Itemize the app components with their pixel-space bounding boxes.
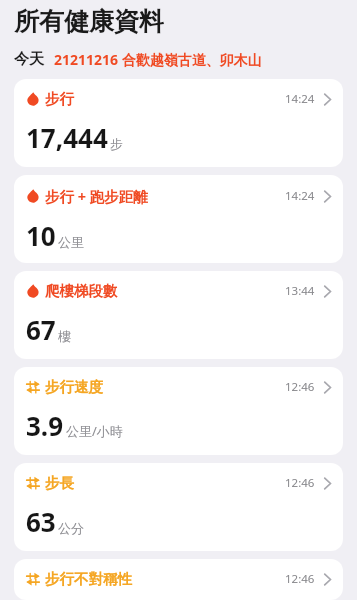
staticText: 步行速度 bbox=[45, 378, 103, 396]
staticText: 67 bbox=[26, 312, 56, 347]
staticText: 13:44 bbox=[285, 283, 315, 299]
staticText: 12:46 bbox=[285, 571, 315, 587]
other: Open details bbox=[324, 573, 331, 586]
staticText: 63 bbox=[26, 504, 56, 539]
staticText: 公里 bbox=[58, 234, 84, 250]
button[interactable]: 步行 + 跑步距離 bbox=[14, 175, 343, 263]
staticText: 步行 bbox=[45, 90, 74, 108]
button[interactable]: 步行不對稱性 bbox=[14, 559, 343, 600]
staticText: 今天 bbox=[14, 50, 44, 69]
staticText: 步長 bbox=[45, 474, 74, 492]
button[interactable]: 步行速度 bbox=[14, 367, 343, 455]
staticText: 10 bbox=[26, 218, 56, 253]
staticText: 14:24 bbox=[285, 91, 315, 107]
staticText: 公分 bbox=[58, 520, 84, 536]
staticText: 12:46 bbox=[285, 475, 315, 491]
button[interactable]: 爬樓梯段數 bbox=[14, 271, 343, 359]
staticText: 14:24 bbox=[285, 188, 315, 204]
staticText: 步行不對稱性 bbox=[45, 570, 132, 588]
staticText: 公里/小時 bbox=[66, 422, 123, 440]
staticText: 17,444 bbox=[26, 120, 108, 155]
staticText: 12:46 bbox=[285, 379, 315, 395]
other: Open details bbox=[324, 285, 331, 298]
other: Open details bbox=[324, 93, 331, 106]
staticText: 樓 bbox=[58, 328, 71, 344]
staticText: 步行 + 跑步距離 bbox=[45, 186, 148, 206]
staticText: 步 bbox=[110, 136, 123, 152]
staticText: 爬樓梯段數 bbox=[45, 282, 118, 300]
staticText: 3.9 bbox=[26, 408, 64, 443]
button[interactable]: 步行 bbox=[14, 79, 343, 167]
staticText: 21211216 合歡越嶺古道、卯木山 bbox=[54, 50, 262, 69]
button[interactable]: 步長 bbox=[14, 463, 343, 551]
other: Open details bbox=[324, 381, 331, 394]
other: Open details bbox=[324, 190, 331, 203]
other: Open details bbox=[324, 477, 331, 490]
staticText: 所有健康資料 bbox=[14, 6, 164, 37]
